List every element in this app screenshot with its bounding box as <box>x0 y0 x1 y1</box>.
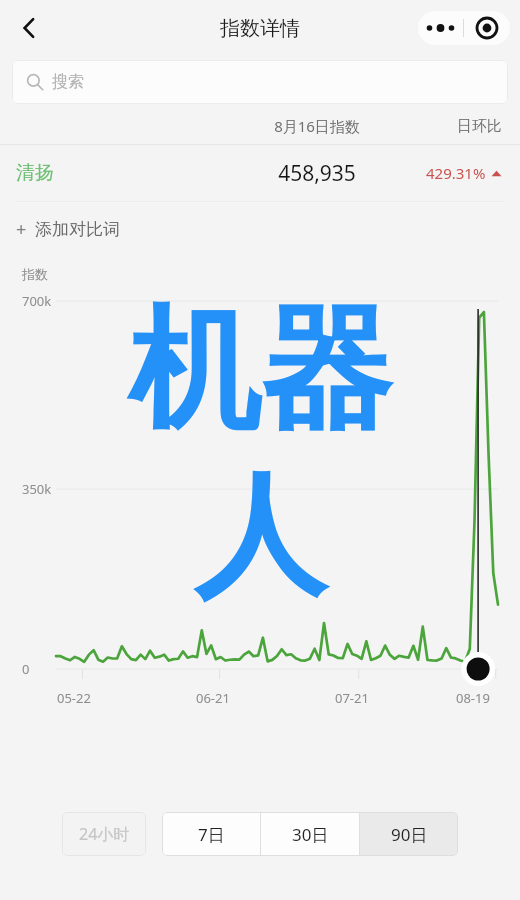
staticText: 08-19 <box>456 689 490 707</box>
staticText: 搜索 <box>52 72 84 92</box>
button[interactable]: 24小时 <box>62 812 146 856</box>
staticText: 添加对比词 <box>35 219 120 240</box>
button[interactable]: 30日 <box>261 812 359 856</box>
staticText: 429.31% <box>426 163 486 183</box>
staticText: 日环比 <box>410 117 502 136</box>
button[interactable]: 7日 <box>162 812 260 856</box>
button[interactable]: 搜索 <box>12 60 508 104</box>
staticText: 06-21 <box>196 689 230 707</box>
staticText: 30日 <box>292 823 329 846</box>
staticText: 机器 <box>128 288 392 454</box>
staticText: 7日 <box>198 823 225 846</box>
staticText: 458,935 <box>224 159 410 188</box>
staticText: 350k <box>22 480 52 498</box>
staticText: 指数 <box>22 266 48 282</box>
staticText: 清扬 <box>16 161 54 185</box>
staticText: 人 <box>194 454 326 620</box>
staticText: 0 <box>22 660 30 678</box>
staticText: 700k <box>22 292 52 310</box>
button[interactable]: + <box>0 202 520 256</box>
button[interactable]: 返回 <box>6 5 52 51</box>
button[interactable]: 更多菜单 <box>418 11 510 45</box>
staticText: 07-21 <box>335 689 369 707</box>
staticText: + <box>16 217 27 242</box>
button[interactable]: 清扬 <box>0 145 520 201</box>
staticText: 90日 <box>391 823 428 846</box>
staticText: 指数详情 <box>220 16 300 41</box>
staticText: 8月16日指数 <box>224 116 410 136</box>
staticText: 05-22 <box>57 689 91 707</box>
button[interactable]: 90日 <box>360 812 458 856</box>
staticText: 24小时 <box>79 823 130 845</box>
